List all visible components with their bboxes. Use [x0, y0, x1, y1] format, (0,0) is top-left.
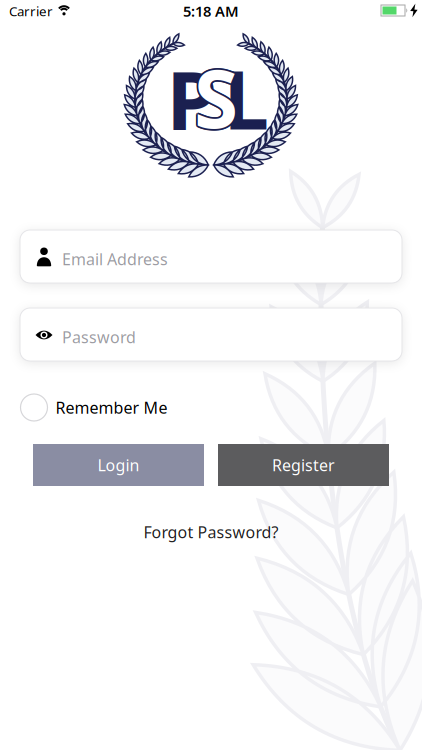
- staticText: P: [166, 44, 217, 152]
- staticText: Carrier: [9, 2, 53, 20]
- staticText: S: [194, 44, 238, 150]
- button[interactable]: Email Address: [20, 230, 402, 283]
- staticText: Remember Me: [55, 397, 167, 418]
- staticText: 5:18 AM: [183, 1, 239, 21]
- button[interactable]: Login: [33, 444, 204, 486]
- staticText: L: [223, 44, 268, 152]
- button[interactable]: Forgot Password?: [143, 521, 278, 543]
- staticText: S: [194, 46, 238, 152]
- button[interactable]: Register: [218, 444, 389, 486]
- button[interactable]: Remember Me: [20, 394, 167, 421]
- button[interactable]: Password: [20, 308, 402, 361]
- staticText: Login: [97, 454, 139, 476]
- staticText: S: [193, 45, 237, 151]
- staticText: Forgot Password?: [143, 521, 278, 543]
- staticText: S: [192, 44, 236, 150]
- staticText: S: [195, 43, 239, 149]
- staticText: Password: [62, 326, 136, 348]
- staticText: S: [193, 43, 237, 149]
- staticText: S: [194, 42, 238, 148]
- staticText: S: [196, 44, 240, 150]
- staticText: Register: [272, 454, 335, 476]
- staticText: Email Address: [62, 248, 168, 270]
- staticText: S: [195, 45, 239, 151]
